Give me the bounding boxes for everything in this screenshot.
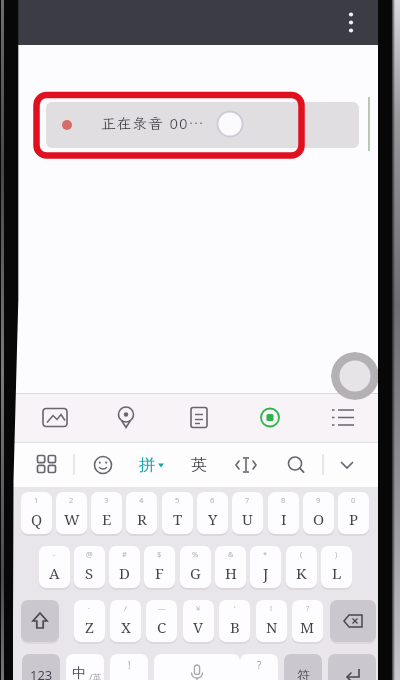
staticText: % (192, 549, 199, 559)
button[interactable] (321, 395, 365, 440)
button[interactable]: ? (292, 600, 323, 642)
button[interactable]: · (74, 600, 105, 642)
button[interactable]: 8 (268, 492, 299, 534)
button[interactable]: 9 (303, 492, 334, 534)
button[interactable]: 拼 (128, 446, 166, 484)
staticText: # (122, 549, 127, 559)
button[interactable]: 3 (91, 492, 122, 534)
button[interactable] (104, 395, 148, 440)
staticText: 拼 (139, 455, 155, 475)
button[interactable]: & (215, 546, 246, 588)
button[interactable]: # (109, 546, 140, 588)
staticText: ? (306, 603, 310, 613)
staticText: $ (157, 549, 162, 559)
staticText: C (157, 617, 167, 637)
button[interactable]: ? (240, 654, 278, 680)
button[interactable]: 中 (66, 654, 104, 680)
button[interactable]: @ (74, 546, 105, 588)
staticText: 4 (139, 495, 144, 505)
button[interactable]: * (250, 546, 281, 588)
button[interactable]: - (39, 546, 70, 588)
button[interactable]: ' (219, 600, 250, 642)
button[interactable]: 英 (181, 446, 217, 484)
button[interactable] (331, 352, 379, 400)
staticText: O (313, 509, 325, 529)
staticText: 123 (30, 666, 53, 680)
staticText: * (263, 549, 268, 559)
staticText: 1 (34, 495, 39, 505)
staticText: W (64, 509, 80, 529)
staticText: B (230, 617, 240, 637)
staticText: K (296, 563, 307, 583)
staticText: H (225, 563, 237, 583)
button[interactable]: ( (286, 546, 317, 588)
staticText: 正在录音 00… (101, 114, 205, 134)
button[interactable] (29, 446, 65, 484)
button[interactable] (154, 654, 240, 680)
button[interactable]: 4 (126, 492, 157, 534)
button[interactable]: 符 (284, 654, 322, 680)
button[interactable] (21, 600, 59, 642)
button[interactable]: 1 (21, 492, 52, 534)
staticText: 5 (175, 495, 180, 505)
staticText: J (263, 563, 269, 583)
button[interactable]: ¥ (183, 600, 214, 642)
button[interactable]: 123 (22, 654, 60, 680)
staticText: E (102, 509, 112, 529)
button[interactable]: 7 (232, 492, 263, 534)
staticText: 中 (72, 665, 86, 680)
button[interactable] (228, 446, 264, 484)
staticText: F (155, 563, 164, 583)
staticText: X (121, 617, 131, 637)
staticText: ' (234, 603, 236, 613)
button[interactable]: — (146, 600, 177, 642)
staticText: 符 (297, 667, 310, 680)
staticText: 8 (281, 495, 286, 505)
staticText: R (137, 509, 147, 529)
staticText: / (124, 603, 127, 613)
staticText: & (228, 549, 234, 559)
button[interactable]: / (110, 600, 141, 642)
button[interactable] (33, 395, 77, 440)
button[interactable]: 0 (338, 492, 369, 534)
button[interactable] (328, 654, 376, 680)
staticText: V (193, 617, 204, 637)
staticText: ! (270, 603, 273, 613)
staticText: Q (31, 509, 43, 529)
staticText: ? (257, 658, 262, 672)
button[interactable] (248, 395, 292, 440)
button[interactable] (329, 446, 365, 484)
button[interactable] (85, 446, 121, 484)
staticText: /英 (89, 671, 102, 680)
button[interactable]: ! (256, 600, 287, 642)
button[interactable] (177, 395, 221, 440)
staticText: @ (86, 549, 93, 559)
button[interactable] (339, 5, 363, 41)
staticText: D (119, 563, 130, 583)
staticText: 0 (351, 495, 356, 505)
button[interactable] (278, 446, 314, 484)
button[interactable]: 2 (56, 492, 87, 534)
staticText: G (190, 563, 201, 583)
staticText: N (266, 617, 278, 637)
staticText: A (49, 563, 60, 583)
staticText: 9 (316, 495, 321, 505)
staticText: 3 (104, 495, 109, 505)
staticText: 6 (210, 495, 215, 505)
button[interactable]: 5 (162, 492, 193, 534)
button[interactable]: $ (144, 546, 175, 588)
button[interactable]: 正在录音 00… (46, 102, 359, 148)
button[interactable]: ! (110, 654, 148, 680)
button[interactable]: % (180, 546, 211, 588)
button[interactable] (330, 600, 376, 642)
staticText: Y (208, 509, 218, 529)
button[interactable]: 6 (197, 492, 228, 534)
staticText: ¥ (196, 603, 201, 613)
staticText: ! (128, 658, 131, 672)
staticText: · (88, 603, 91, 613)
staticText: T (173, 509, 183, 529)
staticText: L (332, 563, 342, 583)
staticText: P (349, 509, 359, 529)
button[interactable]: ) (321, 546, 352, 588)
staticText: 英 (191, 455, 207, 475)
